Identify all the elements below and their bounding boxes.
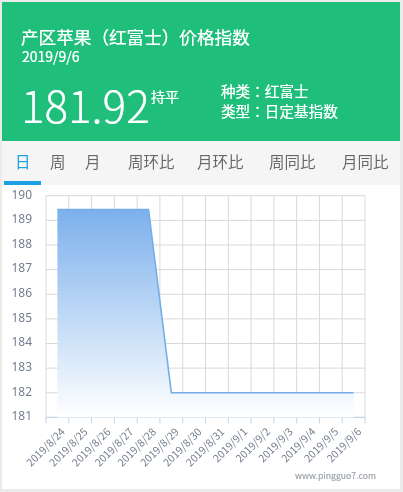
button[interactable]: 月同比	[334, 141, 396, 181]
staticText: 月环比	[197, 150, 244, 172]
staticText: 182	[2, 383, 32, 399]
staticText: 月	[85, 150, 101, 172]
staticText: 185	[2, 309, 32, 325]
staticText: www.pingguo7.com	[295, 469, 376, 482]
button[interactable]: 周	[43, 141, 73, 181]
staticText: 周环比	[128, 150, 175, 172]
staticText: 189	[2, 210, 32, 226]
staticText: 183	[2, 358, 32, 374]
staticText: 月同比	[342, 150, 389, 172]
button[interactable]: 周环比	[120, 141, 182, 181]
staticText: 181	[2, 407, 32, 423]
button[interactable]: 周同比	[261, 141, 323, 181]
button[interactable]: 月环比	[189, 141, 251, 181]
staticText: 产区苹果（红富士）价格指数	[21, 24, 250, 49]
staticText: 周同比	[269, 150, 316, 172]
staticText: 188	[2, 235, 32, 251]
staticText: 2019/9/6	[22, 46, 80, 66]
staticText: 186	[2, 284, 32, 300]
staticText: 持平	[151, 86, 179, 106]
staticText: 190	[2, 186, 32, 202]
staticText: 种类：红富士	[221, 80, 309, 101]
staticText: 187	[2, 259, 32, 275]
button[interactable]: 日	[8, 141, 38, 181]
staticText: 日	[15, 150, 31, 172]
staticText: 类型：日定基指数	[221, 100, 338, 121]
staticText: 184	[2, 333, 32, 349]
button[interactable]: 月	[78, 141, 108, 181]
staticText: 181.92	[21, 72, 150, 136]
staticText: 周	[50, 150, 66, 172]
